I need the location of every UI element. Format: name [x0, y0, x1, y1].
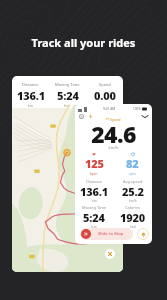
- staticText: 125: [85, 156, 104, 171]
- staticText: rpm: [129, 171, 136, 176]
- staticText: km: [28, 103, 34, 108]
- staticText: 24.6: [75, 118, 152, 149]
- staticText: km/h: [75, 145, 152, 150]
- staticText: km: [92, 199, 97, 203]
- button[interactable]: Alerts: [137, 228, 149, 240]
- button[interactable]: Battery: [87, 113, 94, 120]
- staticText: Slide to Stop: [98, 231, 124, 237]
- staticText: Moving Time: [55, 82, 80, 87]
- staticText: 100%: [133, 107, 141, 111]
- button[interactable]: Collapse: [141, 112, 149, 120]
- staticText: km/h: [100, 103, 109, 108]
- staticText: 9:41 AM: [103, 107, 116, 111]
- staticText: Moving Time: [82, 205, 107, 210]
- button[interactable]: Slide to Stop: [80, 228, 133, 240]
- staticText: 136.1: [80, 184, 108, 199]
- staticText: Track all your rides: [0, 35, 167, 50]
- staticText: Speed: [99, 82, 111, 87]
- staticText: 136.1: [17, 88, 45, 103]
- staticText: kcal: [130, 225, 136, 229]
- button[interactable]: Distance: [12, 76, 123, 272]
- staticText: 0.00: [94, 88, 116, 103]
- staticText: h:m: [91, 225, 97, 229]
- button[interactable]: Settings: [78, 113, 85, 120]
- staticText: bpm: [90, 171, 98, 176]
- staticText: 5:24: [83, 210, 105, 225]
- staticText: km/h: [129, 199, 137, 203]
- staticText: 82: [126, 156, 139, 171]
- staticText: 25.2: [122, 184, 144, 199]
- staticText: Distance: [86, 179, 103, 184]
- staticText: Calories: [125, 205, 141, 210]
- button[interactable]: Close: [105, 249, 115, 259]
- staticText: Speed: [110, 117, 121, 122]
- staticText: h:m: [64, 103, 71, 108]
- staticText: Avg speed: [123, 179, 143, 184]
- staticText: 1920: [120, 210, 145, 225]
- staticText: Distance: [22, 82, 39, 87]
- staticText: 5:24: [57, 88, 79, 103]
